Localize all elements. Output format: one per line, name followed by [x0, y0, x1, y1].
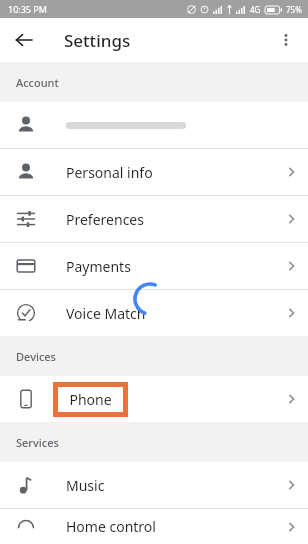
- staticText: Phone: [69, 390, 112, 409]
- staticText: Devices: [16, 349, 56, 364]
- button[interactable]: Phone: [0, 376, 308, 422]
- button[interactable]: [0, 102, 308, 148]
- staticText: 10:35 PM: [8, 3, 47, 15]
- staticText: Music: [66, 476, 274, 495]
- button[interactable]: Payments: [0, 243, 308, 289]
- button[interactable]: More options: [272, 26, 300, 54]
- staticText: Payments: [66, 257, 274, 276]
- button[interactable]: Music: [0, 462, 308, 508]
- button[interactable]: Home control: [0, 509, 308, 544]
- staticText: Services: [16, 435, 59, 450]
- button[interactable]: Personal info: [0, 149, 308, 195]
- staticText: Voice Match: [66, 304, 274, 323]
- staticText: 4G: [250, 4, 261, 15]
- staticText: Home control: [66, 517, 274, 536]
- staticText: Personal info: [66, 163, 274, 182]
- button[interactable]: Voice Match: [0, 290, 308, 336]
- button[interactable]: Back: [10, 26, 38, 54]
- button[interactable]: Preferences: [0, 196, 308, 242]
- staticText: Settings: [64, 29, 131, 52]
- staticText: 75%: [286, 4, 302, 15]
- staticText: Preferences: [66, 210, 274, 229]
- staticText: Account: [16, 75, 59, 90]
